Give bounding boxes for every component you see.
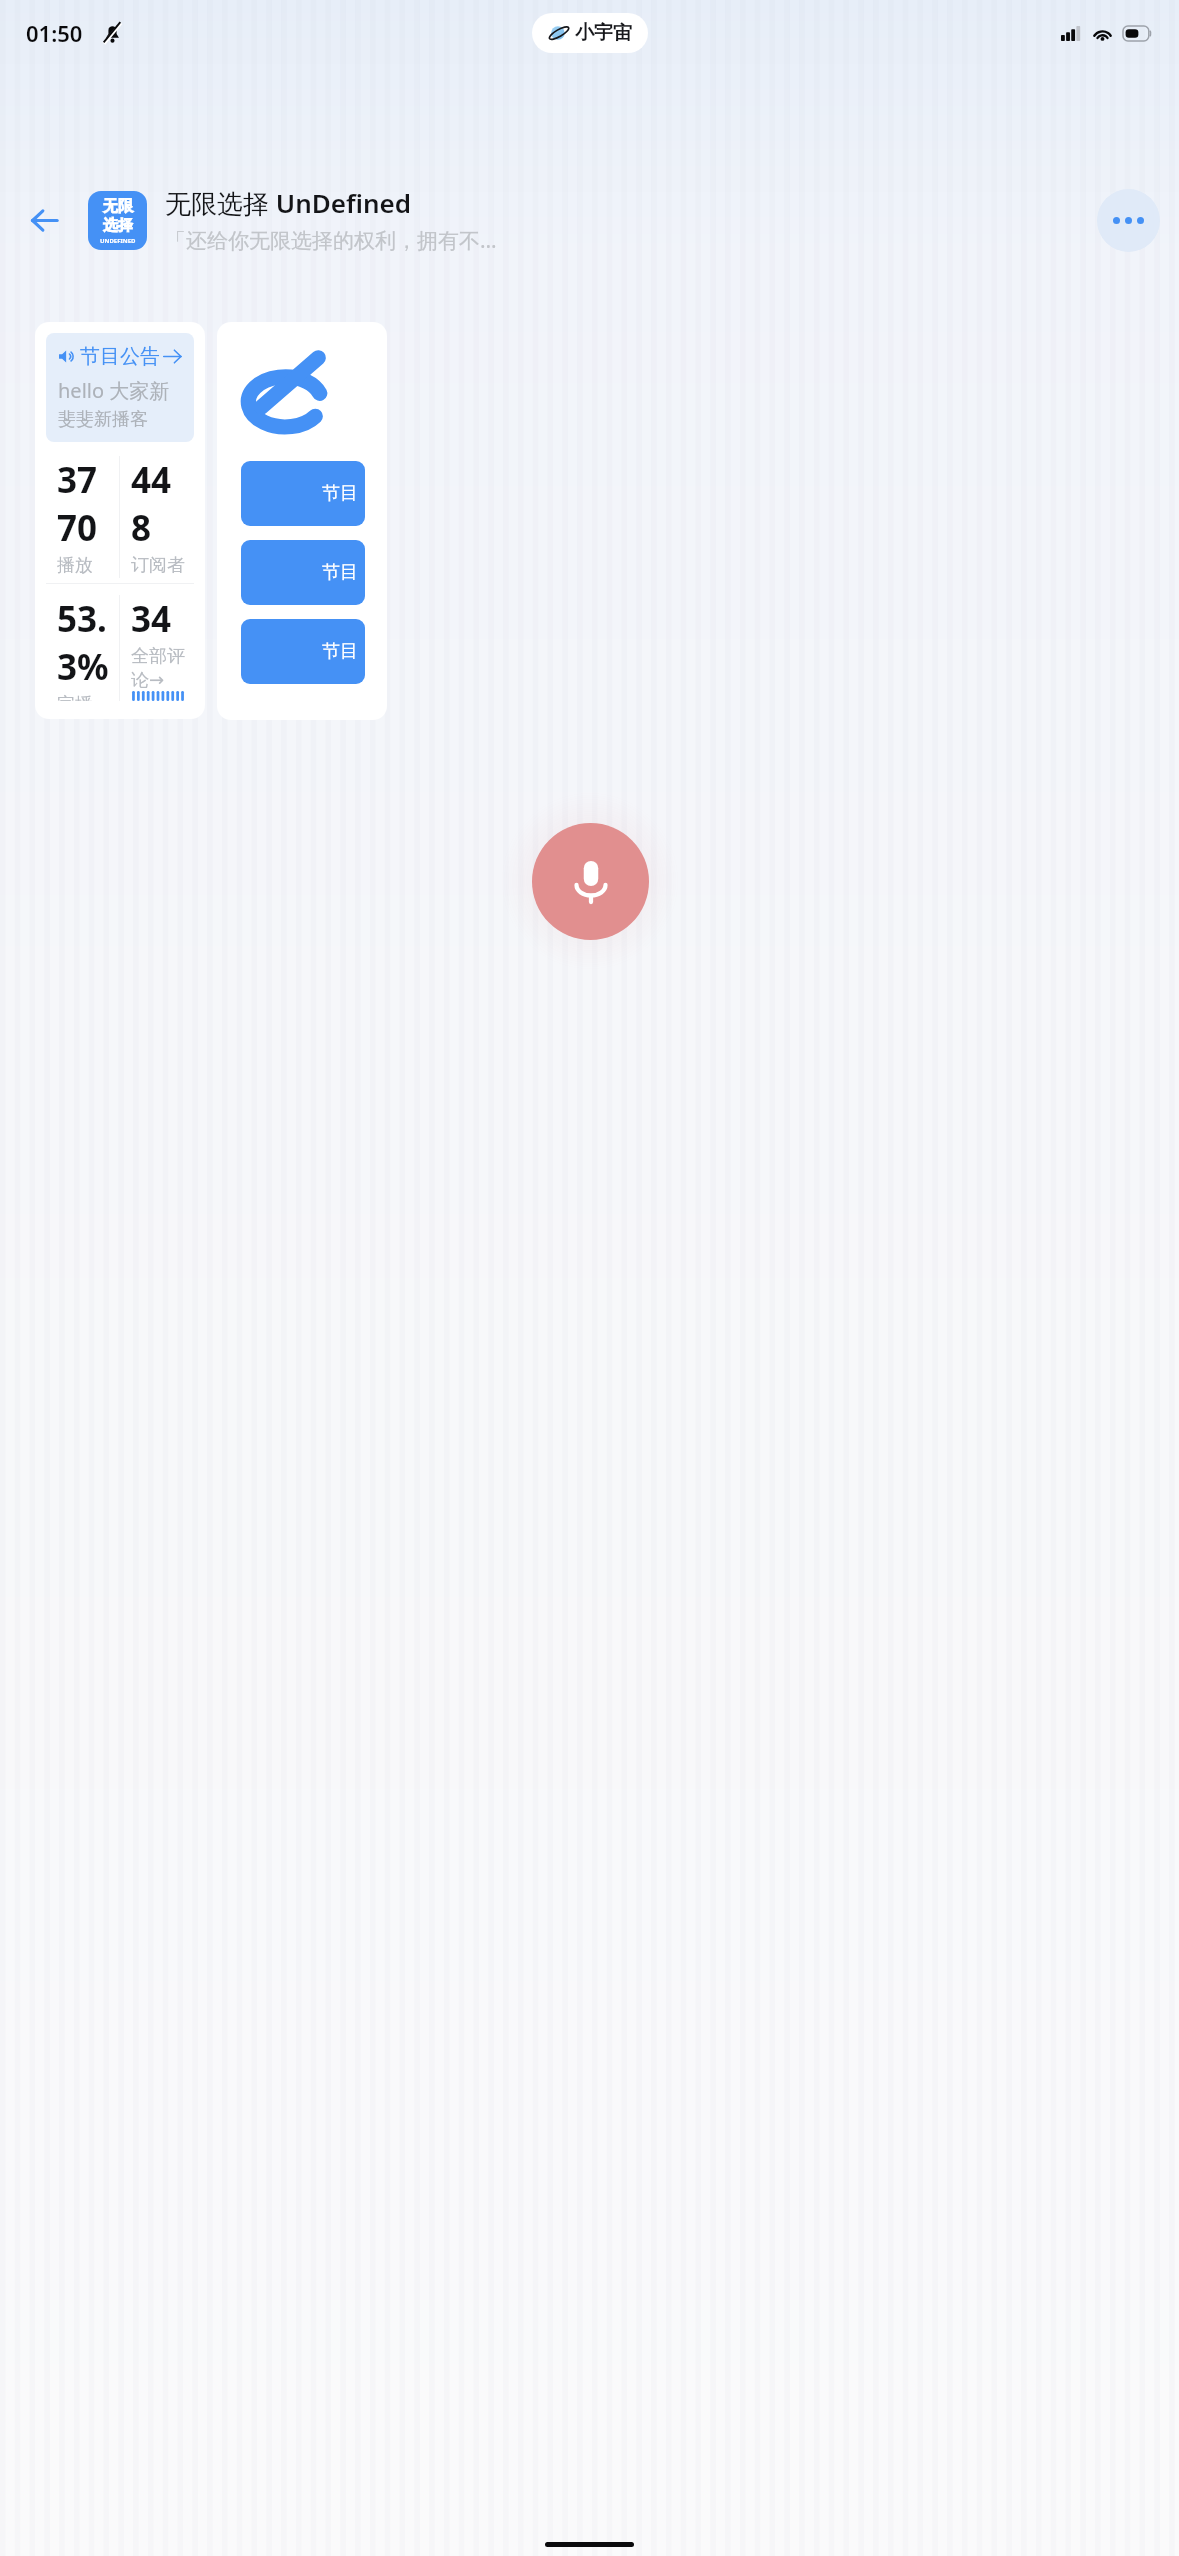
staticText: 小宇宙 [575, 21, 632, 45]
button[interactable]: Back [0, 176, 88, 264]
staticText: 448 [131, 456, 185, 552]
button[interactable]: More options [1097, 189, 1160, 252]
staticText: 53.3% [57, 595, 110, 691]
staticText: 播放量 [57, 554, 110, 578]
staticText: UNDEFINED [100, 237, 136, 245]
button[interactable]: 节目 [241, 540, 365, 605]
staticText: 34 [131, 595, 172, 643]
staticText: 无限选择 UnDefined [165, 185, 412, 221]
staticText: 节目 [322, 561, 358, 584]
button[interactable]: 448 [120, 456, 194, 578]
staticText: 选择 [103, 216, 133, 235]
staticText: 完播率 [57, 693, 110, 701]
staticText: hello 大家新年好 [58, 377, 182, 404]
staticText: 节目公告 [80, 344, 160, 369]
staticText: 全部评论→ [131, 645, 185, 691]
staticText: 节目 [322, 482, 358, 505]
button[interactable]: 53.3% [46, 595, 119, 701]
staticText: 3770 [57, 456, 110, 552]
button[interactable]: 无限 [88, 191, 147, 250]
staticText: 01:50 [26, 18, 83, 48]
button[interactable]: 节目公告 [35, 322, 205, 719]
button[interactable]: 节目 [241, 619, 365, 684]
staticText: 斐斐新播客《行内人指北》上线啦，… [58, 408, 182, 431]
staticText: 订阅者→ [131, 554, 185, 578]
button[interactable]: 3770 [46, 456, 119, 578]
button[interactable]: 34 [120, 595, 194, 701]
button[interactable]: 节目公告 [46, 333, 194, 442]
button[interactable]: 节目 [241, 461, 365, 526]
staticText: 节目 [322, 640, 358, 663]
staticText: 无限 [103, 197, 133, 216]
staticText: 「还给你无限选择的权利，拥有不… [165, 226, 497, 255]
button[interactable]: 节目 [217, 322, 387, 720]
button[interactable]: Record [532, 823, 649, 940]
button[interactable]: 无限选择 UnDefined [165, 185, 1097, 255]
